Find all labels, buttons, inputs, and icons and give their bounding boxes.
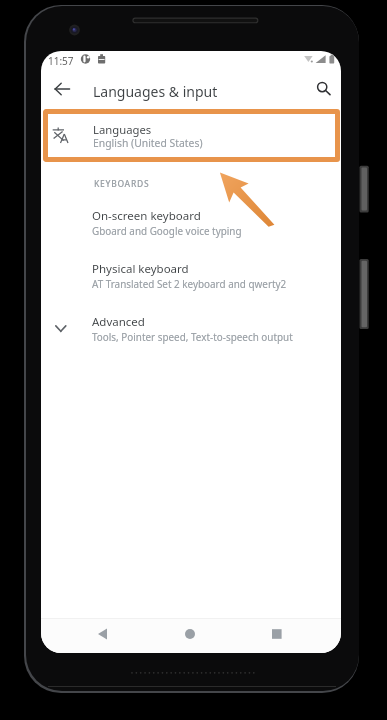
staticText: AT Translated Set 2 keyboard and qwerty2 bbox=[92, 277, 287, 290]
staticText: KEYBOARDS bbox=[94, 178, 150, 190]
staticText: Languages & input bbox=[93, 82, 218, 101]
button[interactable]: Advanced bbox=[41, 310, 341, 360]
staticText: On-screen keyboard bbox=[92, 208, 201, 224]
button[interactable]: On-screen keyboard bbox=[41, 204, 341, 254]
button[interactable]: Languages bbox=[43, 109, 340, 162]
button[interactable]: Search bbox=[308, 75, 336, 103]
staticText: Advanced bbox=[92, 314, 145, 330]
staticText: Tools, Pointer speed, Text-to-speech out… bbox=[92, 330, 293, 343]
button[interactable]: Physical keyboard bbox=[41, 257, 341, 307]
staticText: 11:57 bbox=[48, 54, 74, 68]
button[interactable]: Back bbox=[47, 75, 75, 103]
staticText: Gboard and Google voice typing bbox=[92, 224, 242, 237]
staticText: Languages bbox=[93, 122, 152, 137]
staticText: English (United States) bbox=[93, 136, 203, 150]
staticText: Physical keyboard bbox=[92, 261, 189, 277]
